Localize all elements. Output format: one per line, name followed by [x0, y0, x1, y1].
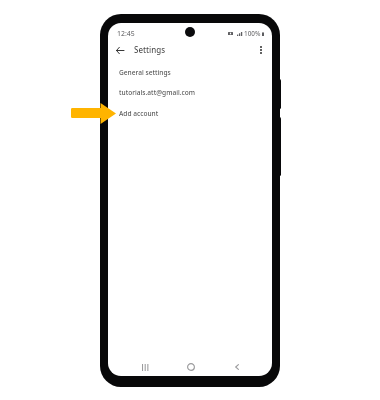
staticText: tutorials.att@gmail.com: [119, 88, 196, 97]
button[interactable]: Navigate up: [111, 41, 129, 59]
button[interactable]: Home: [182, 358, 200, 376]
button[interactable]: Add account: [108, 103, 272, 124]
staticText: 12:45: [117, 29, 135, 38]
button[interactable]: Recent apps: [136, 358, 154, 376]
staticText: Settings: [134, 44, 166, 55]
button[interactable]: Back: [228, 358, 246, 376]
staticText: Add account: [119, 109, 159, 118]
staticText: General settings: [119, 68, 171, 77]
staticText: 100%: [244, 29, 261, 38]
button[interactable]: More options: [252, 41, 270, 59]
button[interactable]: General settings: [108, 62, 272, 83]
button[interactable]: tutorials.att@gmail.com: [108, 82, 272, 103]
